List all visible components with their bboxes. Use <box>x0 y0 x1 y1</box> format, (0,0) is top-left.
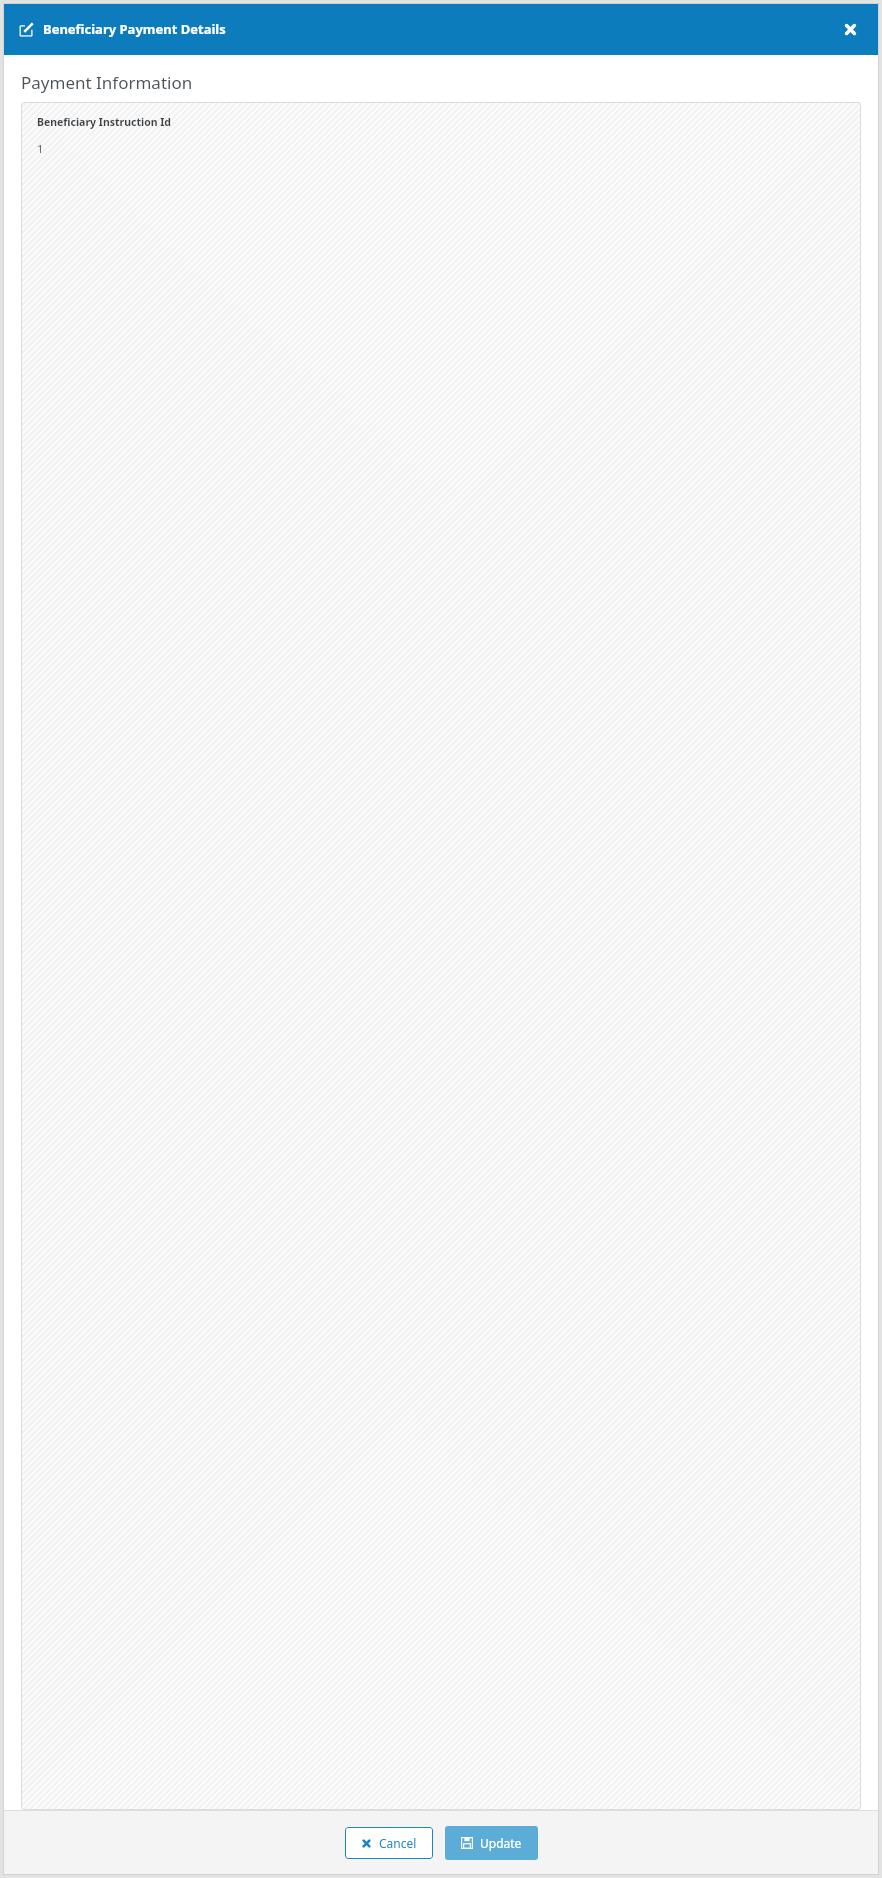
staticText: 1 <box>37 141 44 156</box>
button[interactable]: Cancel <box>345 1827 433 1859</box>
staticText: Beneficiary Payment Details <box>43 20 837 38</box>
staticText: Payment Information <box>21 71 193 94</box>
staticText: Cancel <box>379 1835 417 1851</box>
staticText: Update <box>480 1835 522 1851</box>
button[interactable]: Close <box>837 16 863 42</box>
staticText: Beneficiary Instruction Id <box>37 115 172 129</box>
button[interactable]: Update <box>445 1826 538 1860</box>
